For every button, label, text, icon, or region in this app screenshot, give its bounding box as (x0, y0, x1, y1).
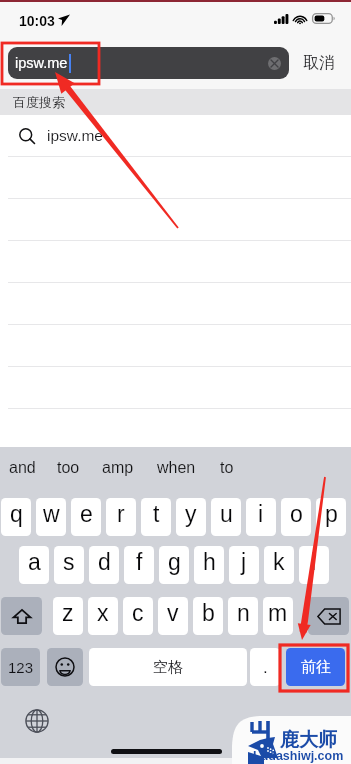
staticText: l (311, 549, 317, 575)
button[interactable]: too (57, 454, 80, 482)
button[interactable]: z (53, 597, 83, 635)
button[interactable]: ipsw.me (0, 115, 351, 156)
button[interactable] (0, 199, 351, 240)
staticText: v (167, 600, 179, 626)
button[interactable]: and (9, 454, 36, 482)
staticText: ipsw.me (47, 127, 103, 144)
button[interactable]: 取消 (297, 47, 341, 79)
button[interactable]: ipsw.me (8, 47, 289, 79)
button[interactable]: 空格 (89, 648, 247, 686)
staticText: m (268, 600, 288, 626)
staticText: 10:03 (19, 13, 55, 29)
staticText: amp (102, 459, 134, 477)
staticText: r (117, 501, 125, 527)
staticText: i (258, 501, 264, 527)
staticText: e (80, 501, 93, 527)
staticText: h (203, 549, 216, 575)
staticText: j (241, 549, 247, 575)
button[interactable]: t (141, 498, 171, 536)
staticText: x (97, 600, 109, 626)
button[interactable]: d (89, 546, 119, 584)
button[interactable]: s (54, 546, 84, 584)
staticText: when (157, 459, 196, 477)
button[interactable]: to (220, 454, 234, 482)
button[interactable]: Clear text (268, 57, 281, 70)
staticText: a (28, 549, 41, 575)
button[interactable]: j (229, 546, 259, 584)
staticText: . (263, 658, 268, 677)
button[interactable]: r (106, 498, 136, 536)
button[interactable]: g (159, 546, 189, 584)
button[interactable]: q (1, 498, 31, 536)
button[interactable]: Shift (1, 597, 42, 635)
staticText: t (153, 501, 160, 527)
button[interactable] (0, 157, 351, 198)
button[interactable]: n (228, 597, 258, 635)
button[interactable]: i (246, 498, 276, 536)
button[interactable]: Emoji keyboard (47, 648, 83, 686)
staticText: 123 (8, 659, 34, 676)
button[interactable]: k (264, 546, 294, 584)
staticText: z (62, 600, 74, 626)
staticText: 百度搜索 (13, 94, 65, 110)
button[interactable]: o (281, 498, 311, 536)
staticText: q (10, 501, 23, 527)
button[interactable]: 前往 (286, 648, 345, 686)
button[interactable]: p (316, 498, 346, 536)
staticText: 空格 (153, 658, 183, 677)
button[interactable]: y (176, 498, 206, 536)
staticText: p (325, 501, 338, 527)
staticText: k (273, 549, 285, 575)
button[interactable]: when (157, 454, 196, 482)
button[interactable]: u (211, 498, 241, 536)
staticText: and (9, 459, 36, 477)
button[interactable]: e (71, 498, 101, 536)
button[interactable]: m (263, 597, 293, 635)
button[interactable]: l (299, 546, 329, 584)
staticText: u (220, 501, 233, 527)
staticText: Ludashiwj.com (253, 749, 344, 763)
staticText: g (168, 549, 181, 575)
staticText: b (202, 600, 215, 626)
button[interactable]: v (158, 597, 188, 635)
button[interactable]: Switch keyboard (25, 709, 49, 733)
button[interactable]: . (250, 648, 280, 686)
button[interactable]: w (36, 498, 66, 536)
staticText: 鹿大师 (280, 728, 337, 752)
staticText: ipsw.me (15, 55, 68, 71)
staticText: o (290, 501, 303, 527)
staticText: s (63, 549, 75, 575)
button[interactable]: c (123, 597, 153, 635)
staticText: d (98, 549, 111, 575)
button[interactable]: Backspace (308, 597, 349, 635)
staticText: 前往 (301, 658, 331, 677)
staticText: to (220, 459, 234, 477)
button[interactable]: x (88, 597, 118, 635)
staticText: 取消 (303, 53, 335, 73)
staticText: f (136, 549, 143, 575)
button[interactable]: b (193, 597, 223, 635)
staticText: too (57, 459, 80, 477)
button[interactable]: a (19, 546, 49, 584)
staticText: n (237, 600, 250, 626)
button[interactable]: f (124, 546, 154, 584)
button[interactable]: amp (102, 454, 134, 482)
staticText: c (132, 600, 144, 626)
staticText: y (185, 501, 197, 527)
staticText: w (43, 501, 60, 527)
button[interactable]: 123 (1, 648, 40, 686)
button[interactable]: h (194, 546, 224, 584)
